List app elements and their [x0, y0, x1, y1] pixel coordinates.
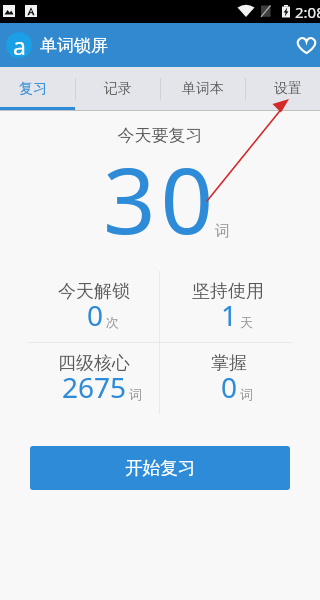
button[interactable]: 今天解锁	[0, 271, 159, 342]
staticText: 单词本	[182, 80, 224, 98]
button[interactable]: 开始复习	[30, 446, 290, 490]
staticText: 开始复习	[125, 457, 196, 479]
button[interactable]: 设置	[246, 67, 320, 111]
button[interactable]: 记录	[76, 67, 161, 111]
staticText: 今天要复习	[0, 125, 320, 146]
staticText: 四级核心	[58, 352, 130, 375]
staticText: 次	[106, 314, 119, 330]
staticText: 天	[240, 314, 253, 330]
staticText: a	[13, 32, 26, 56]
staticText: 掌握	[211, 352, 247, 375]
button[interactable]: Favorite	[282, 23, 320, 67]
button[interactable]: App icon	[6, 32, 32, 58]
staticText: 2:08	[295, 2, 320, 22]
staticText: 词	[129, 386, 142, 402]
staticText: 设置	[274, 80, 302, 98]
staticText: 1	[221, 296, 238, 334]
button[interactable]: 四级核心	[0, 343, 159, 414]
staticText: 记录	[104, 80, 132, 98]
button[interactable]: 单词本	[161, 67, 246, 111]
staticText: 单词锁屏	[40, 35, 108, 56]
staticText: 0	[221, 368, 238, 406]
staticText: 复习	[19, 80, 47, 98]
staticText: 词	[215, 222, 230, 241]
button[interactable]: 掌握	[160, 343, 320, 414]
staticText: 2675	[62, 368, 127, 406]
button[interactable]: 坚持使用	[160, 271, 320, 342]
staticText: 词	[240, 386, 253, 402]
staticText: 0	[87, 296, 104, 334]
staticText: 坚持使用	[192, 280, 264, 303]
staticText: 30	[103, 136, 219, 261]
staticText: 今天解锁	[58, 280, 130, 303]
button[interactable]: 复习	[0, 67, 76, 111]
